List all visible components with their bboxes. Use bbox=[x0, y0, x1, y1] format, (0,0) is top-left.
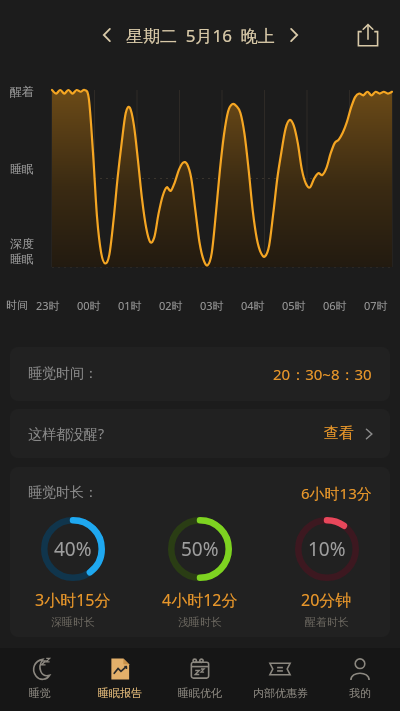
staticText: 20：30~8：30 bbox=[273, 364, 372, 384]
staticText: 50% bbox=[181, 536, 219, 562]
staticText: 查看 bbox=[324, 424, 354, 443]
staticText: 睡觉时长： bbox=[28, 484, 98, 502]
staticText: 睡觉时间： bbox=[28, 365, 98, 383]
button[interactable]: 睡眠报告 bbox=[80, 648, 160, 711]
button[interactable]: 睡眠优化 bbox=[160, 648, 240, 711]
staticText: 10% bbox=[308, 536, 346, 562]
staticText: 06时 bbox=[323, 298, 347, 313]
staticText: 00时 bbox=[77, 298, 101, 313]
staticText: 4小时12分 bbox=[162, 589, 238, 611]
button[interactable]: 这样都没醒? bbox=[10, 409, 390, 458]
button[interactable]: 睡觉时间： bbox=[10, 347, 390, 401]
staticText: 20分钟 bbox=[301, 589, 352, 611]
staticText: 醒着时长 bbox=[305, 615, 349, 629]
button[interactable]: 内部优惠券 bbox=[240, 648, 320, 711]
staticText: 01时 bbox=[118, 298, 142, 313]
staticText: 我的 bbox=[349, 686, 371, 700]
button[interactable]: Next day bbox=[281, 22, 307, 48]
button[interactable]: 我的 bbox=[320, 648, 400, 711]
staticText: 这样都没醒? bbox=[28, 424, 105, 443]
staticText: 07时 bbox=[364, 298, 388, 313]
staticText: 睡眠 bbox=[10, 161, 34, 176]
button[interactable]: 睡觉 bbox=[0, 648, 80, 711]
staticText: 星期二 5月16 晚上 bbox=[126, 24, 275, 47]
staticText: 03时 bbox=[200, 298, 224, 313]
staticText: 浅睡时长 bbox=[178, 615, 222, 629]
staticText: 深睡时长 bbox=[51, 615, 95, 629]
button[interactable]: Share bbox=[350, 17, 386, 53]
staticText: 时间 bbox=[6, 298, 28, 312]
staticText: 睡眠 bbox=[10, 251, 34, 266]
staticText: 6小时13分 bbox=[301, 483, 372, 503]
staticText: 深度 bbox=[10, 236, 34, 251]
staticText: 醒着 bbox=[10, 84, 34, 99]
button[interactable]: Previous day bbox=[94, 22, 120, 48]
staticText: 3小时15分 bbox=[35, 589, 111, 611]
staticText: 04时 bbox=[241, 298, 265, 313]
staticText: 05时 bbox=[282, 298, 306, 313]
staticText: 内部优惠券 bbox=[253, 686, 308, 700]
staticText: 睡眠报告 bbox=[98, 686, 142, 700]
button[interactable]: 睡觉时长： bbox=[10, 467, 390, 637]
staticText: 睡觉 bbox=[29, 686, 51, 700]
staticText: 02时 bbox=[159, 298, 183, 313]
staticText: 睡眠优化 bbox=[178, 686, 222, 700]
staticText: 40% bbox=[54, 536, 92, 562]
staticText: 23时 bbox=[36, 298, 60, 313]
